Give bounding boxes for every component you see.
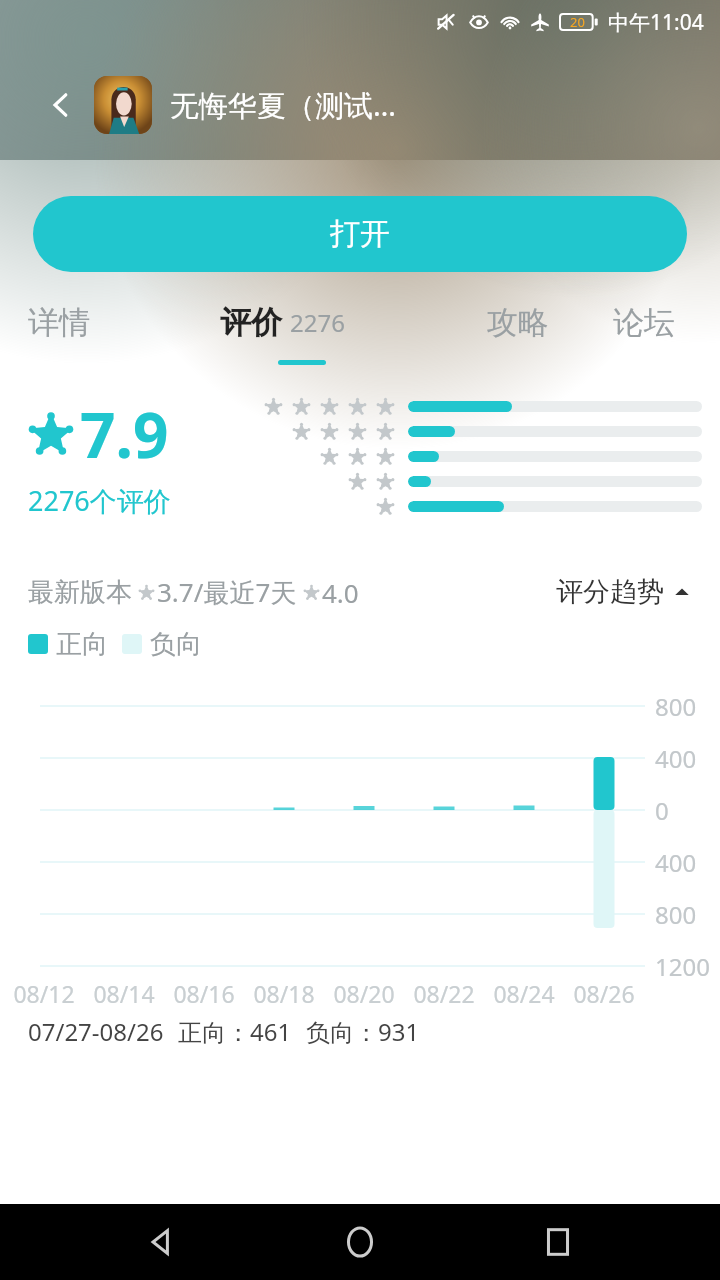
- staticText: 800: [655, 690, 697, 723]
- button[interactable]: 打开: [33, 196, 687, 272]
- staticText: 评分趋势: [556, 575, 664, 609]
- staticText: 08/22: [413, 978, 475, 1009]
- staticText: 08/16: [173, 978, 235, 1009]
- staticText: 详情: [28, 303, 90, 342]
- staticText: 1200: [655, 950, 710, 983]
- staticText: 08/18: [253, 978, 315, 1009]
- staticText: 负向：931: [306, 1015, 420, 1048]
- staticText: 800: [655, 898, 697, 931]
- button[interactable]: 评分趋势: [552, 569, 694, 615]
- staticText: 正向: [56, 628, 108, 661]
- staticText: 08/20: [333, 978, 395, 1009]
- staticText: 08/26: [573, 978, 635, 1009]
- staticText: 20: [570, 13, 585, 31]
- staticText: 评价: [220, 303, 282, 342]
- staticText: 08/12: [13, 978, 75, 1009]
- staticText: 正向：461: [178, 1015, 292, 1048]
- button[interactable]: 论坛: [613, 272, 675, 372]
- staticText: 400: [655, 846, 697, 879]
- button[interactable]: Back: [42, 86, 80, 124]
- button[interactable]: 详情: [28, 272, 90, 372]
- staticText: 08/24: [493, 978, 555, 1009]
- staticText: 负向: [150, 628, 202, 661]
- staticText: 7.9: [80, 392, 169, 476]
- staticText: 4.0: [322, 575, 359, 610]
- staticText: 0: [655, 794, 669, 827]
- button[interactable]: Back: [126, 1206, 198, 1278]
- staticText: 400: [655, 742, 697, 775]
- button[interactable]: Recent apps: [522, 1206, 594, 1278]
- staticText: 攻略: [487, 303, 549, 342]
- staticText: 2276个评价: [28, 482, 171, 519]
- staticText: 中午11:04: [608, 8, 704, 37]
- staticText: 08/14: [93, 978, 155, 1009]
- button[interactable]: 评价: [220, 272, 345, 372]
- button[interactable]: Home: [324, 1206, 396, 1278]
- staticText: 无悔华夏（测试…: [170, 85, 396, 125]
- staticText: 3.7/最近7天: [157, 574, 297, 610]
- staticText: 07/27-08/26: [28, 1015, 164, 1048]
- staticText: 打开: [330, 215, 390, 253]
- staticText: 2276: [290, 306, 345, 339]
- staticText: 最新版本: [28, 576, 132, 609]
- staticText: 论坛: [613, 303, 675, 342]
- button[interactable]: 攻略: [487, 272, 549, 372]
